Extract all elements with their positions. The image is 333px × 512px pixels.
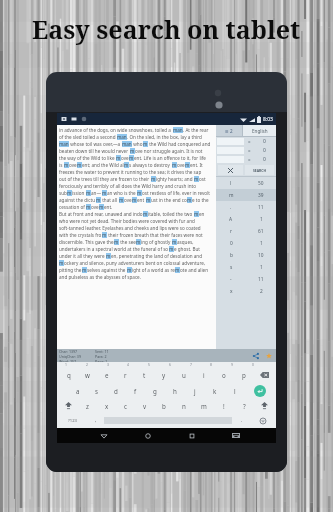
- button[interactable]: d: [106, 383, 125, 398]
- staticText: ent. It: [190, 162, 203, 168]
- button[interactable]: j: [185, 383, 205, 398]
- staticText: itable, toiled the two: [148, 211, 194, 217]
- button[interactable]: x: [216, 285, 276, 297]
- staticText: ent.: [104, 204, 113, 210]
- button[interactable]: v: [135, 398, 154, 413]
- staticText: who: [132, 141, 143, 147]
- staticText: -: [230, 276, 232, 283]
- button[interactable]: ,: [87, 413, 104, 428]
- staticText: m: [127, 267, 132, 273]
- button[interactable]: ?: [234, 398, 254, 413]
- button[interactable]: s: [216, 261, 276, 273]
- button[interactable]: z: [78, 398, 97, 413]
- button[interactable]: o: [214, 367, 234, 383]
- staticText: Easy search on tablet: [32, 12, 301, 46]
- button[interactable]: y: [154, 367, 174, 383]
- staticText: SEARCH: [253, 168, 267, 173]
- button[interactable]: t: [135, 367, 154, 383]
- button[interactable]: e: [97, 367, 116, 383]
- staticText: x: [230, 288, 233, 295]
- button[interactable]: p: [234, 367, 254, 383]
- staticText: z: [86, 402, 89, 410]
- button[interactable]: English: [243, 125, 276, 136]
- button[interactable]: Shift: [254, 398, 274, 413]
- staticText: that all: [101, 197, 119, 203]
- button[interactable]: 0: [216, 237, 276, 249]
- staticText: sub: [59, 190, 67, 196]
- button[interactable]: r: [216, 225, 276, 237]
- staticText: =: [248, 148, 251, 154]
- staticText: p: [242, 371, 246, 379]
- button[interactable]: s: [87, 383, 106, 398]
- staticText: cessation of: [59, 204, 86, 210]
- staticText: m: [187, 197, 192, 203]
- button[interactable]: Keyboard: [214, 428, 258, 443]
- staticText: l: [234, 387, 236, 395]
- staticText: Word: 257: [59, 359, 77, 362]
- staticText: v: [143, 402, 147, 410]
- staticText: man: [117, 134, 127, 140]
- button[interactable]: Share: [250, 350, 262, 362]
- button[interactable]: u: [174, 367, 194, 383]
- button[interactable]: .: [216, 201, 276, 213]
- staticText: selves against the: [87, 267, 127, 273]
- staticText: h: [173, 387, 177, 395]
- staticText: the see: [119, 239, 136, 245]
- button[interactable]: !: [214, 398, 234, 413]
- button[interactable]: h: [165, 383, 185, 398]
- button[interactable]: m: [194, 398, 214, 413]
- staticText: m: [136, 239, 141, 245]
- staticText: s: [95, 387, 98, 395]
- staticText: ,: [95, 417, 97, 424]
- button[interactable]: x: [97, 398, 116, 413]
- button[interactable]: l: [216, 177, 276, 189]
- button[interactable]: i: [194, 367, 214, 383]
- staticText: m: [99, 204, 104, 210]
- button[interactable]: Back: [82, 428, 126, 443]
- button[interactable]: m: [216, 189, 276, 201]
- staticText: their frozen breath that their faces wer…: [107, 232, 203, 238]
- staticText: f: [134, 387, 137, 395]
- button[interactable]: Shift: [59, 398, 78, 413]
- button[interactable]: Recents: [170, 428, 214, 443]
- button[interactable]: n: [174, 398, 194, 413]
- button[interactable]: Emoji: [251, 413, 274, 428]
- button[interactable]: q: [59, 367, 78, 383]
- button[interactable]: a: [68, 383, 87, 398]
- button[interactable]: k: [205, 383, 225, 398]
- button[interactable]: w: [78, 367, 97, 383]
- button[interactable]: ?123: [59, 413, 87, 428]
- staticText: ight of a world as re: [132, 267, 175, 273]
- button[interactable]: Clear: [218, 165, 243, 175]
- button[interactable]: g: [145, 383, 165, 398]
- staticText: ove: [121, 155, 129, 161]
- button[interactable]: Home: [126, 428, 170, 443]
- button[interactable]: -: [216, 273, 276, 285]
- button[interactable]: b: [154, 398, 174, 413]
- staticText: ove: [124, 197, 132, 203]
- button[interactable]: ≡ 2: [216, 125, 242, 136]
- staticText: i: [203, 371, 205, 379]
- staticText: is: [59, 162, 64, 168]
- button[interactable]: l: [225, 383, 245, 398]
- staticText: m: [102, 232, 107, 238]
- staticText: 9: [231, 362, 233, 367]
- staticText: m: [124, 162, 129, 168]
- button[interactable]: A: [216, 213, 276, 225]
- staticText: m: [172, 239, 177, 245]
- staticText: 11: [258, 204, 264, 211]
- button[interactable]: b: [216, 249, 276, 261]
- button[interactable]: f: [125, 383, 145, 398]
- button[interactable]: Enter: [254, 385, 266, 397]
- button[interactable]: Bookmark: [262, 349, 276, 362]
- button[interactable]: c: [116, 398, 135, 413]
- button[interactable]: r: [116, 367, 135, 383]
- staticText: 7: [190, 362, 192, 367]
- button[interactable]: SEARCH: [245, 165, 274, 175]
- button[interactable]: Backspace: [254, 367, 274, 383]
